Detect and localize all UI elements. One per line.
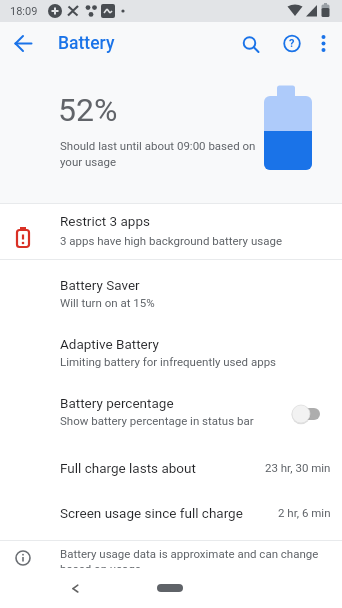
staticText: Adaptive Battery xyxy=(60,336,159,352)
button[interactable] xyxy=(0,22,46,65)
staticText: 18:09 xyxy=(10,5,38,18)
staticText: Will turn on at 15% xyxy=(60,296,155,309)
button[interactable] xyxy=(60,573,90,603)
staticText: Screen usage since full charge xyxy=(60,505,243,521)
staticText: 3 apps have high background battery usag… xyxy=(60,234,282,247)
button[interactable]: Screen usage since full charge xyxy=(0,490,342,535)
button[interactable] xyxy=(150,573,190,603)
staticText: 23 hr, 30 min xyxy=(265,461,331,474)
button[interactable] xyxy=(230,22,270,65)
staticText: Battery usage data is approximate and ca… xyxy=(60,547,319,576)
staticText: Should last until about 09:00 based on y… xyxy=(60,139,256,169)
staticText: Battery xyxy=(58,33,115,54)
staticText: Battery percentage xyxy=(60,395,174,411)
button[interactable]: Restrict 3 apps xyxy=(0,204,342,259)
staticText: 52% xyxy=(58,91,118,129)
staticText: 2 hr, 6 min xyxy=(278,506,331,519)
staticText: ? xyxy=(289,37,295,50)
button[interactable]: Battery Saver xyxy=(0,263,342,322)
staticText: Full charge lasts about xyxy=(60,460,196,476)
button[interactable]: ? xyxy=(272,22,312,65)
button[interactable] xyxy=(308,22,340,65)
staticText: Restrict 3 apps xyxy=(60,213,150,229)
staticText: Limiting battery for infrequently used a… xyxy=(60,355,277,368)
button[interactable]: Full charge lasts about xyxy=(0,445,342,490)
button[interactable]: Adaptive Battery xyxy=(0,322,342,381)
button[interactable]: Battery percentage xyxy=(0,381,342,440)
staticText: Show battery percentage in status bar xyxy=(60,414,254,427)
staticText: Battery Saver xyxy=(60,277,140,293)
